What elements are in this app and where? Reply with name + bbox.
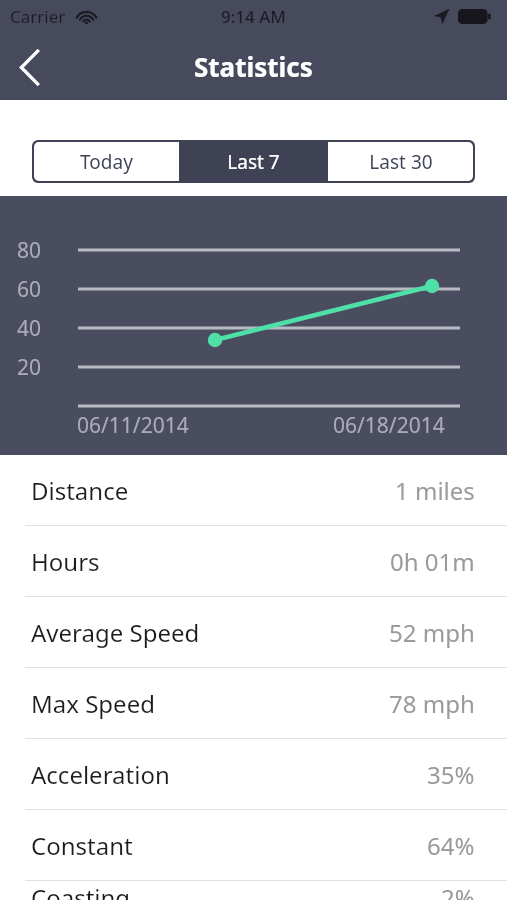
staticText: 2% (441, 881, 475, 900)
staticText: 60 (17, 275, 42, 304)
staticText: 64% (427, 829, 475, 862)
staticText: Carrier (10, 5, 66, 28)
button[interactable]: Back (0, 38, 58, 96)
button[interactable]: Hours (0, 526, 507, 596)
button[interactable]: Coasting (0, 881, 507, 900)
staticText: Last 7 (227, 149, 280, 175)
staticText: Acceleration (31, 758, 170, 791)
staticText: 06/11/2014 (77, 411, 189, 440)
staticText: Today (80, 149, 133, 175)
button[interactable]: Today (34, 142, 179, 181)
staticText: 52 mph (389, 616, 475, 649)
staticText: Last 30 (369, 149, 433, 175)
button[interactable]: Acceleration (0, 739, 507, 809)
staticText: 1 miles (395, 474, 475, 507)
staticText: Average Speed (31, 616, 200, 649)
staticText: Constant (31, 829, 133, 862)
staticText: 40 (17, 314, 42, 343)
staticText: Statistics (194, 49, 313, 84)
staticText: 20 (17, 353, 42, 382)
staticText: Coasting (31, 881, 131, 900)
staticText: 78 mph (389, 687, 475, 720)
staticText: Distance (31, 474, 129, 507)
staticText: 80 (17, 236, 42, 265)
staticText: Max Speed (31, 687, 155, 720)
staticText: 9:14 AM (221, 5, 286, 28)
staticText: 0h 01m (390, 545, 475, 578)
button[interactable]: Average Speed (0, 597, 507, 667)
button[interactable]: Constant (0, 810, 507, 880)
button[interactable]: Max Speed (0, 668, 507, 738)
button[interactable]: Last 30 (328, 142, 473, 181)
button[interactable]: Distance (0, 455, 507, 525)
staticText: 06/18/2014 (333, 411, 445, 440)
staticText: 35% (427, 758, 475, 791)
staticText: Hours (31, 545, 100, 578)
button[interactable]: Last 7 (181, 142, 326, 181)
